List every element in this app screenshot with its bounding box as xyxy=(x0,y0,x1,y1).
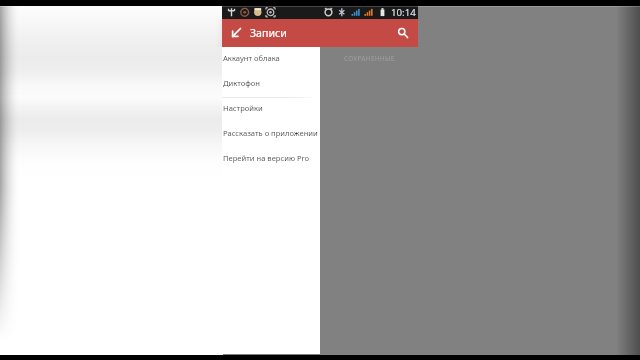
button[interactable]: Рассказать о приложении xyxy=(222,120,320,145)
staticText: Рассказать о приложении xyxy=(223,128,318,138)
staticText: Диктофон xyxy=(223,78,261,88)
button[interactable]: Close navigation drawer xyxy=(222,47,418,354)
staticText: Записи xyxy=(250,26,287,40)
button[interactable]: Перейти на версию Pro xyxy=(222,145,320,170)
button[interactable]: Настройки xyxy=(222,95,320,120)
button[interactable]: Open navigation drawer xyxy=(222,19,250,47)
staticText: Настройки xyxy=(223,103,263,113)
staticText: Перейти на версию Pro xyxy=(223,153,310,163)
button[interactable]: Диктофон xyxy=(222,70,320,95)
button[interactable]: Аккаунт облака xyxy=(222,45,320,70)
staticText: Аккаунт облака xyxy=(223,53,280,63)
button[interactable]: СОХРАНЕННЫЕ xyxy=(320,47,418,68)
staticText: СОХРАНЕННЫЕ xyxy=(344,54,395,63)
staticText: 10:14 xyxy=(391,6,416,19)
button[interactable]: Search xyxy=(389,19,417,47)
